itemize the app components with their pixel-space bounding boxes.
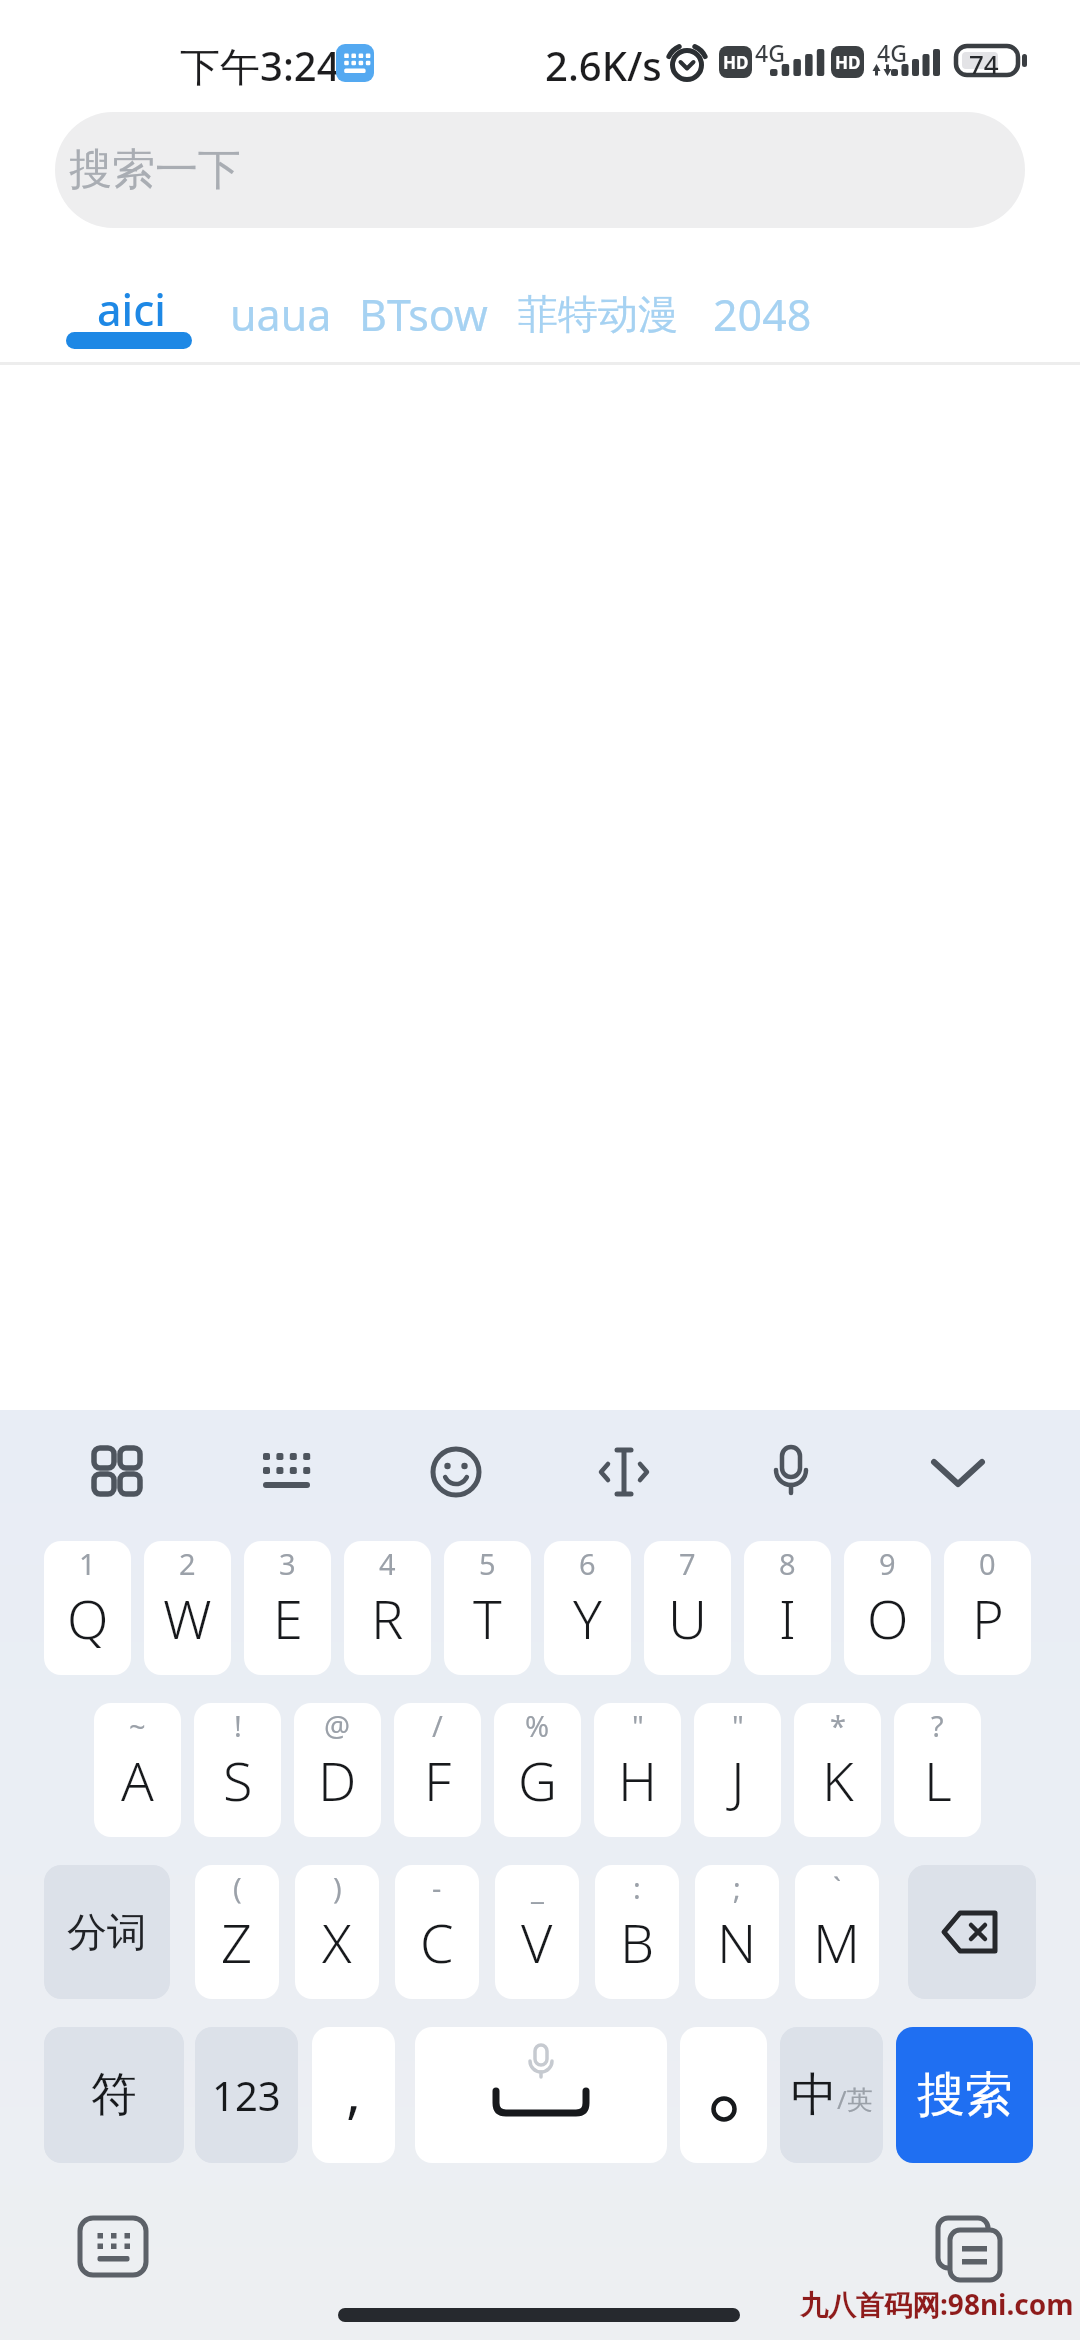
- button[interactable]: ~: [94, 1703, 181, 1837]
- staticText: (: [233, 1868, 242, 1907]
- staticText: 0: [979, 1544, 996, 1583]
- staticText: 6: [579, 1544, 596, 1583]
- staticText: :: [633, 1868, 641, 1907]
- staticText: 搜索一下: [69, 143, 241, 197]
- staticText: F: [424, 1743, 452, 1817]
- staticText: %: [525, 1706, 550, 1745]
- button[interactable]: 3: [244, 1541, 331, 1675]
- button[interactable]: ": [594, 1703, 681, 1837]
- staticText: T: [473, 1581, 502, 1655]
- button[interactable]: [85, 1439, 149, 1503]
- button[interactable]: :: [595, 1865, 679, 1999]
- staticText: 8: [779, 1544, 796, 1583]
- staticText: `: [833, 1868, 842, 1907]
- staticText: V: [521, 1905, 553, 1979]
- staticText: HD: [835, 51, 861, 74]
- button[interactable]: -: [395, 1865, 479, 1999]
- staticText: 4G: [755, 37, 785, 68]
- staticText: Y: [573, 1581, 602, 1655]
- button[interactable]: `: [795, 1865, 879, 1999]
- staticText: W: [163, 1581, 212, 1655]
- staticText: D: [318, 1743, 357, 1817]
- staticText: uaua: [230, 285, 332, 344]
- staticText: 2.6K/s: [545, 38, 662, 92]
- staticText: O: [867, 1581, 909, 1655]
- staticText: 九八首码网:98ni.com: [800, 2285, 1074, 2323]
- staticText: 4G: [877, 37, 907, 68]
- button[interactable]: !: [194, 1703, 281, 1837]
- staticText: L: [924, 1743, 952, 1817]
- button[interactable]: aici: [97, 280, 166, 339]
- staticText: X: [322, 1905, 352, 1979]
- button[interactable]: 搜索: [896, 2027, 1033, 2163]
- button[interactable]: [759, 1439, 823, 1503]
- button[interactable]: 菲特动漫: [518, 289, 678, 339]
- button[interactable]: ": [694, 1703, 781, 1837]
- button[interactable]: 分词: [44, 1865, 170, 1999]
- button[interactable]: ?: [894, 1703, 981, 1837]
- staticText: BTsow: [359, 285, 488, 344]
- button[interactable]: 2: [144, 1541, 231, 1675]
- staticText: C: [420, 1905, 454, 1979]
- button[interactable]: 0: [944, 1541, 1031, 1675]
- staticText: ;: [733, 1868, 741, 1907]
- button[interactable]: ;: [695, 1865, 779, 1999]
- button[interactable]: BTsow: [359, 285, 488, 344]
- button[interactable]: (: [195, 1865, 279, 1999]
- button[interactable]: 符: [44, 2027, 184, 2163]
- staticText: !: [234, 1706, 242, 1745]
- button[interactable]: *: [794, 1703, 881, 1837]
- button[interactable]: 搜索一下: [55, 112, 1025, 228]
- button[interactable]: [908, 1865, 1036, 1999]
- staticText: 分词: [67, 1907, 147, 1957]
- button[interactable]: /: [394, 1703, 481, 1837]
- staticText: ,: [346, 2053, 362, 2129]
- staticText: H: [618, 1743, 658, 1817]
- staticText: aici: [97, 280, 166, 339]
- staticText: 中: [791, 2066, 837, 2124]
- button[interactable]: ): [295, 1865, 379, 1999]
- button[interactable]: 6: [544, 1541, 631, 1675]
- button[interactable]: 1: [44, 1541, 131, 1675]
- button[interactable]: uaua: [230, 285, 332, 344]
- staticText: ?: [931, 1706, 944, 1745]
- button[interactable]: 5: [444, 1541, 531, 1675]
- staticText: ": [732, 1706, 744, 1745]
- button[interactable]: 7: [644, 1541, 731, 1675]
- button[interactable]: [680, 2027, 767, 2163]
- staticText: 3: [279, 1544, 296, 1583]
- staticText: 符: [91, 2066, 137, 2124]
- button[interactable]: [415, 2027, 667, 2163]
- staticText: G: [518, 1743, 558, 1817]
- button[interactable]: 4: [344, 1541, 431, 1675]
- staticText: E: [273, 1581, 303, 1655]
- staticText: 菲特动漫: [518, 289, 678, 339]
- button[interactable]: 123: [195, 2027, 298, 2163]
- staticText: J: [731, 1743, 745, 1817]
- button[interactable]: ,: [312, 2027, 395, 2163]
- button[interactable]: [72, 2210, 154, 2282]
- button[interactable]: 中: [780, 2027, 883, 2163]
- staticText: _: [531, 1868, 544, 1907]
- staticText: 123: [212, 2068, 281, 2122]
- staticText: ~: [129, 1706, 146, 1745]
- button[interactable]: [255, 1439, 319, 1503]
- button[interactable]: 9: [844, 1541, 931, 1675]
- button[interactable]: @: [294, 1703, 381, 1837]
- button[interactable]: [592, 1440, 656, 1504]
- staticText: -: [432, 1868, 442, 1907]
- button[interactable]: 8: [744, 1541, 831, 1675]
- button[interactable]: [424, 1440, 488, 1504]
- staticText: *: [830, 1706, 846, 1745]
- staticText: /: [432, 1706, 443, 1745]
- staticText: 74: [969, 46, 999, 81]
- button[interactable]: _: [495, 1865, 579, 1999]
- staticText: 7: [679, 1544, 696, 1583]
- staticText: A: [121, 1743, 154, 1817]
- staticText: 9: [879, 1544, 896, 1583]
- button[interactable]: 2048: [713, 285, 812, 344]
- button[interactable]: [926, 1440, 990, 1504]
- button[interactable]: %: [494, 1703, 581, 1837]
- staticText: ": [632, 1706, 644, 1745]
- button[interactable]: [928, 2208, 1008, 2288]
